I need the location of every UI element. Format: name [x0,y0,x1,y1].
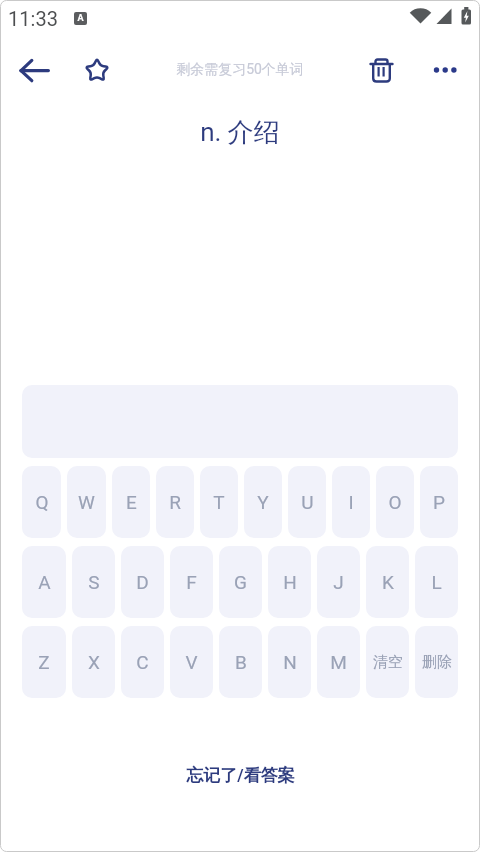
staticText: A [77,13,84,24]
button[interactable]: K [366,546,409,618]
staticText: K [382,571,394,593]
button[interactable]: V [170,626,213,698]
button[interactable]: P [420,466,458,538]
staticText: G [234,571,247,593]
button[interactable]: 清空 [366,626,409,698]
staticText: L [431,571,442,593]
button[interactable]: O [376,466,414,538]
staticText: P [433,491,445,513]
button[interactable] [356,46,404,94]
button[interactable]: H [268,546,311,618]
button[interactable]: N [268,626,311,698]
button[interactable] [421,46,469,94]
staticText: Q [35,491,49,513]
staticText: C [136,651,149,673]
button[interactable]: T [200,466,238,538]
staticText: M [330,651,347,673]
staticText: n. 介绍 [200,116,280,149]
staticText: 忘记了/看答案 [186,765,295,786]
staticText: O [388,491,402,513]
staticText: J [333,571,344,593]
button[interactable]: D [121,546,164,618]
button[interactable]: A [22,546,66,618]
button[interactable]: E [112,466,150,538]
staticText: X [88,651,100,673]
staticText: Z [38,651,50,673]
staticText: 清空 [373,653,403,672]
button[interactable]: Q [22,466,61,538]
button[interactable]: M [317,626,360,698]
staticText: I [348,491,354,513]
staticText: V [185,651,198,673]
staticText: H [283,571,297,593]
button[interactable]: 忘记了/看答案 [178,757,303,794]
staticText: S [88,571,100,593]
staticText: B [235,651,247,673]
staticText: Y [257,491,269,513]
button[interactable] [12,46,60,94]
button[interactable]: F [170,546,213,618]
staticText: T [213,491,225,513]
button[interactable]: J [317,546,360,618]
button[interactable]: S [72,546,115,618]
button[interactable]: Y [244,466,282,538]
staticText: E [126,491,137,513]
button[interactable]: B [219,626,262,698]
button[interactable]: I [332,466,370,538]
staticText: 剩余需复习50个单词 [176,61,304,79]
staticText: 11:33 [8,7,58,30]
staticText: 删除 [422,653,452,672]
button[interactable]: R [156,466,194,538]
button[interactable]: G [219,546,262,618]
button[interactable]: L [415,546,458,618]
staticText: N [283,651,297,673]
button[interactable]: C [121,626,164,698]
staticText: R [169,491,181,513]
staticText: W [78,491,95,513]
staticText: D [136,571,149,593]
staticText: F [186,571,197,593]
button[interactable]: Z [22,626,66,698]
button[interactable]: 删除 [415,626,458,698]
staticText: U [301,491,314,513]
button[interactable]: W [67,466,106,538]
staticText: A [38,571,51,593]
button[interactable]: X [72,626,115,698]
button[interactable] [73,46,121,94]
button[interactable]: U [288,466,326,538]
